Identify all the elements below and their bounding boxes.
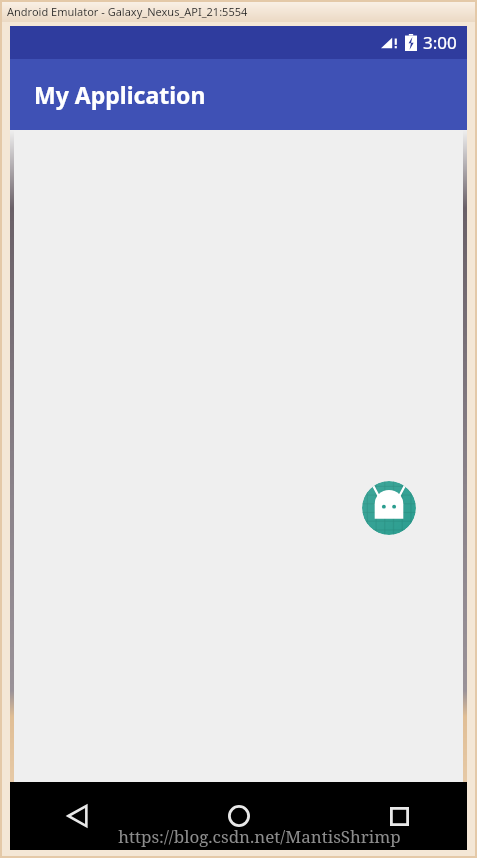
button[interactable]: Home bbox=[217, 794, 261, 838]
button[interactable]: Back bbox=[56, 794, 100, 838]
button[interactable]: My Application bbox=[10, 59, 467, 130]
staticText: Android Emulator - Galaxy_Nexus_API_21:5… bbox=[7, 4, 248, 19]
staticText: https://blog.csdn.net/MantisShrimp bbox=[52, 825, 467, 848]
staticText: 3:00 bbox=[423, 31, 457, 54]
button[interactable]: Recent apps bbox=[377, 794, 421, 838]
staticText: My Application bbox=[34, 79, 206, 110]
button[interactable]: App icon bbox=[362, 481, 416, 535]
